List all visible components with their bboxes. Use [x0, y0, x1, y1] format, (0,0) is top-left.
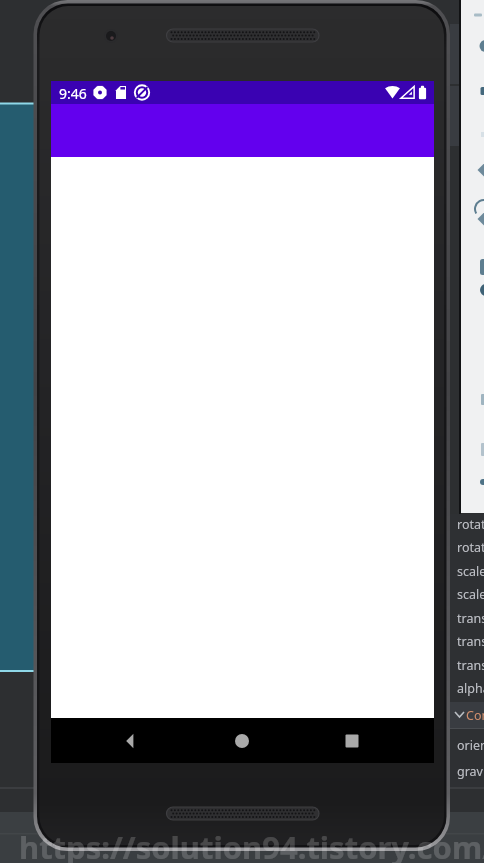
staticText: orientation [457, 737, 484, 754]
button[interactable]: Recent apps [332, 718, 372, 763]
staticText: https://solution94.tistory.com/ [19, 826, 484, 863]
staticText: alpha [457, 680, 484, 697]
staticText: 9:46 [59, 84, 87, 103]
staticText: translationY [457, 633, 484, 650]
staticText: scaleY [457, 586, 484, 603]
staticText: translationZ [457, 657, 484, 674]
button[interactable]: Back [110, 718, 150, 763]
button[interactable]: Home [222, 718, 262, 763]
staticText: scaleX [457, 563, 484, 580]
staticText: rotationX [457, 539, 484, 556]
staticText: translationX [457, 610, 484, 627]
staticText: gravity [457, 763, 484, 780]
staticText: Common Attributes [466, 707, 484, 724]
staticText: rotation [457, 516, 484, 533]
